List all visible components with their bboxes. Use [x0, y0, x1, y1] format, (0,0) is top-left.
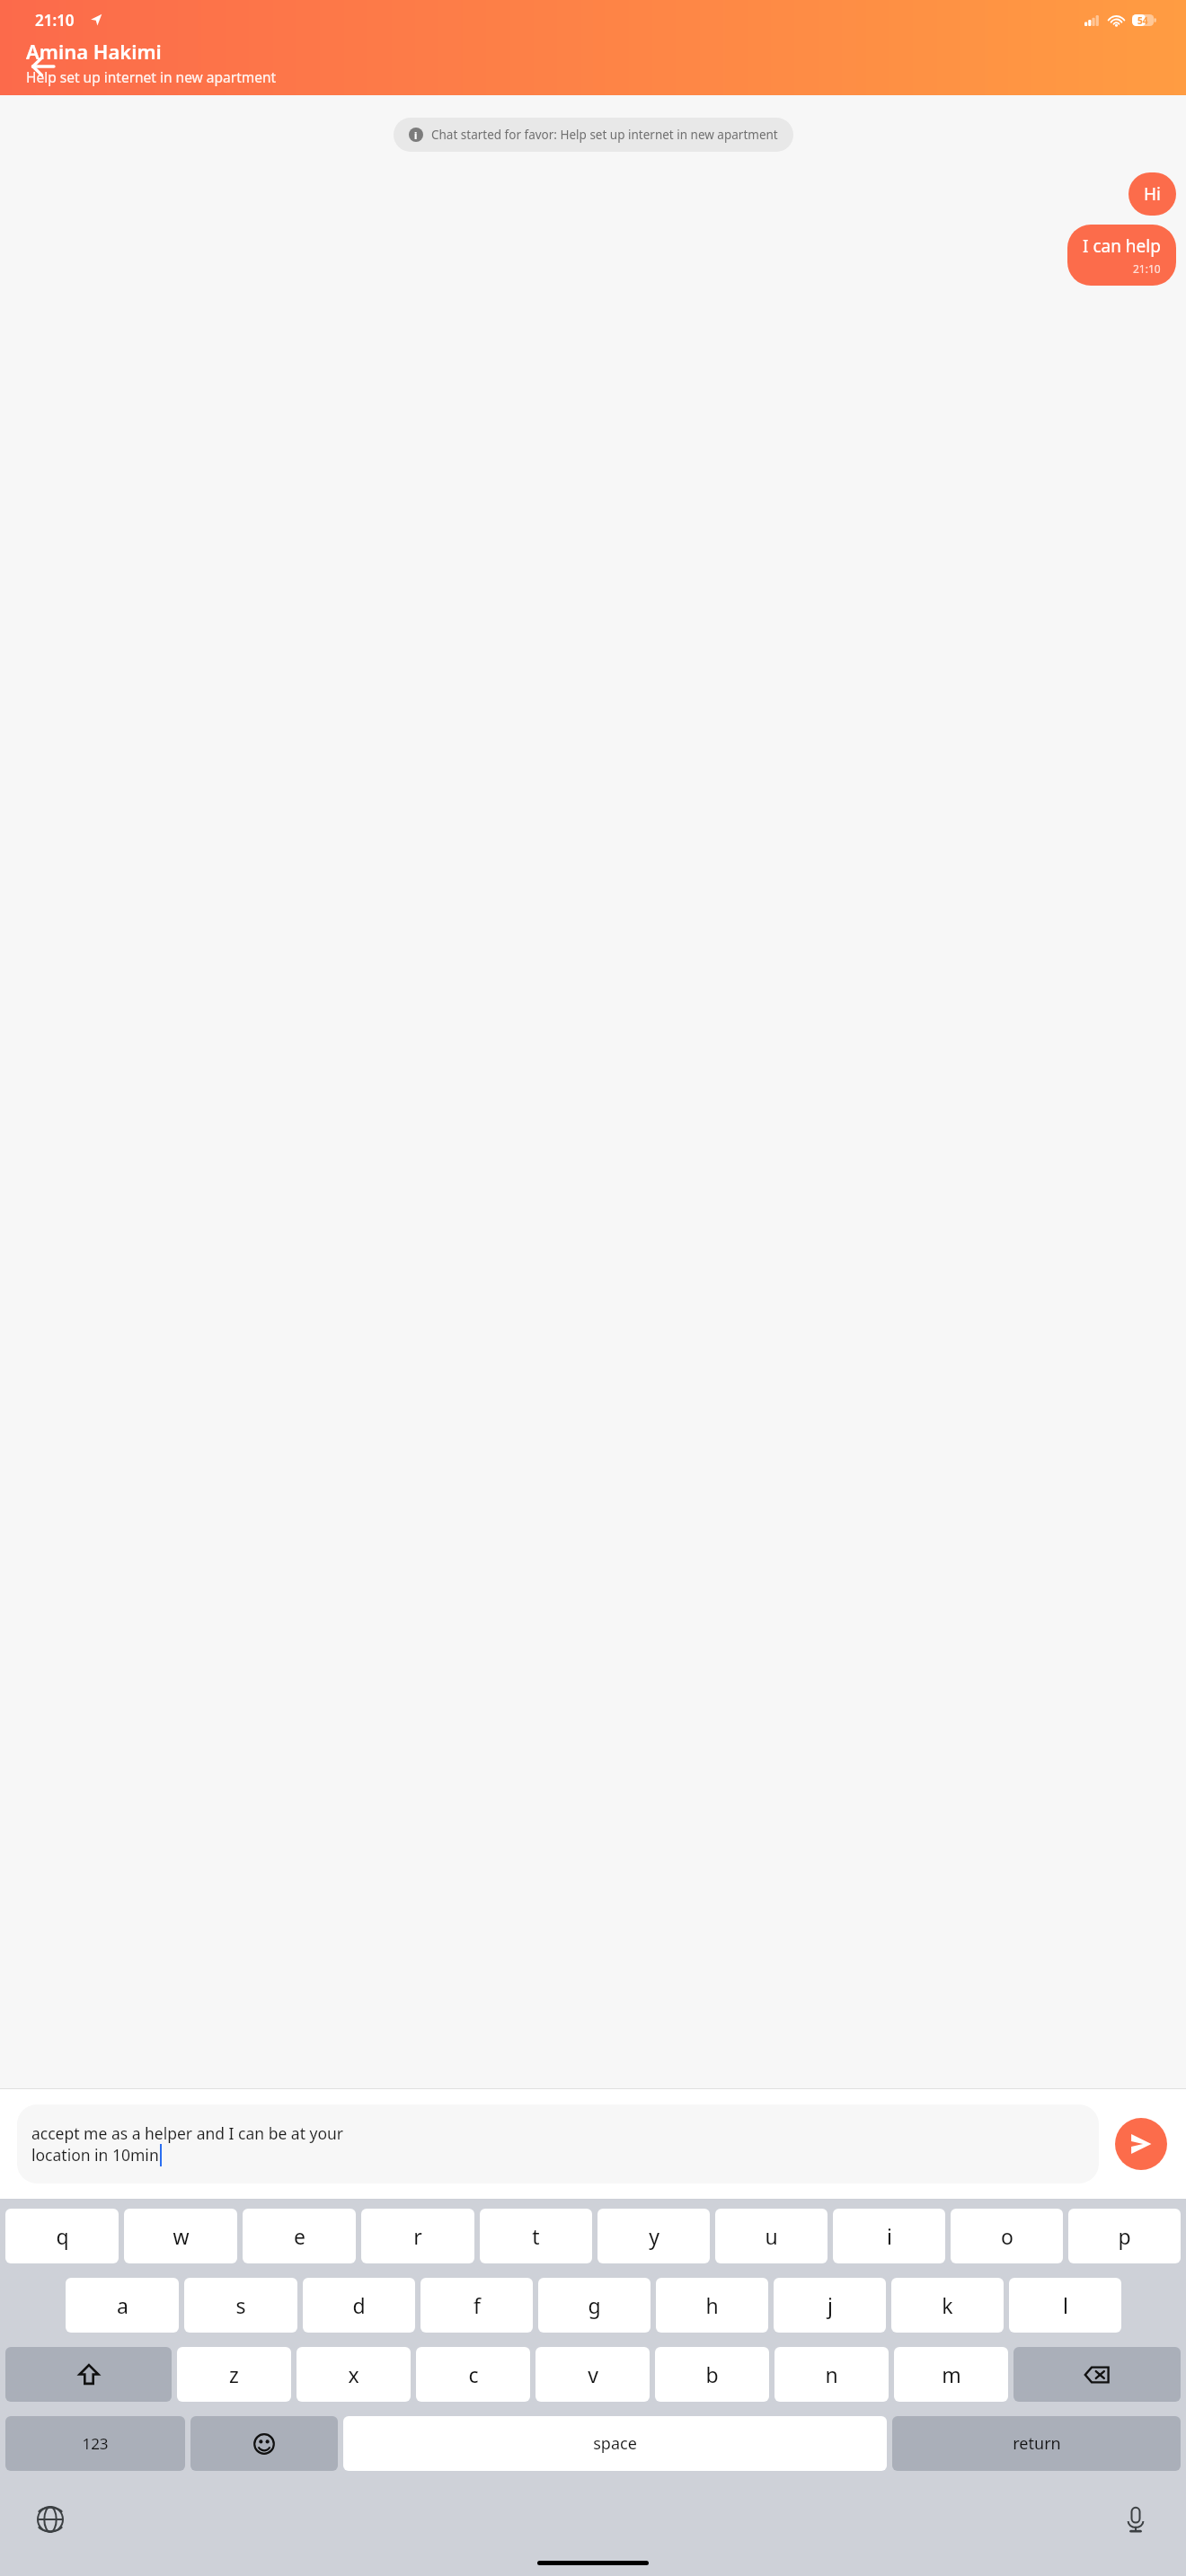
staticText: o — [1001, 2222, 1013, 2250]
staticText: a — [117, 2291, 128, 2319]
staticText: u — [765, 2222, 778, 2250]
button[interactable]: I can help — [1067, 225, 1176, 286]
button[interactable]: q — [5, 2209, 119, 2263]
button[interactable]: e — [243, 2209, 356, 2263]
button[interactable]: accept me as a helper and I can be at yo… — [17, 2104, 1099, 2183]
button[interactable]: Change language — [27, 2496, 74, 2543]
button[interactable]: g — [538, 2278, 651, 2333]
button[interactable]: Voice input — [1112, 2496, 1159, 2543]
button[interactable]: space — [343, 2416, 887, 2471]
button[interactable]: v — [535, 2347, 650, 2402]
staticText: Chat started for favor: Help set up inte… — [431, 127, 778, 143]
staticText: space — [593, 2432, 637, 2455]
staticText: m — [942, 2360, 961, 2388]
staticText: k — [942, 2291, 953, 2319]
button[interactable]: p — [1068, 2209, 1181, 2263]
staticText: n — [825, 2360, 838, 2388]
button[interactable]: Shift — [5, 2347, 172, 2402]
staticText: Amina Hakimi — [26, 38, 162, 65]
staticText: f — [474, 2291, 481, 2319]
button[interactable]: 123 — [5, 2416, 185, 2471]
staticText: r — [413, 2222, 422, 2250]
button[interactable]: Emoji — [190, 2416, 338, 2471]
staticText: z — [229, 2360, 239, 2388]
button[interactable]: i — [394, 118, 793, 152]
button[interactable]: h — [656, 2278, 768, 2333]
staticText: j — [828, 2291, 833, 2319]
staticText: d — [352, 2291, 366, 2319]
staticText: p — [1118, 2222, 1131, 2250]
button[interactable]: c — [416, 2347, 530, 2402]
staticText: 21:10 — [1133, 261, 1161, 276]
staticText: accept me as a helper and I can be at yo… — [31, 2122, 344, 2166]
staticText: c — [468, 2360, 479, 2388]
button[interactable]: Backspace — [1013, 2347, 1181, 2402]
staticText: g — [588, 2291, 601, 2319]
button[interactable]: Hi — [1128, 172, 1176, 216]
staticText: b — [705, 2360, 719, 2388]
button[interactable]: t — [480, 2209, 592, 2263]
button[interactable]: y — [597, 2209, 710, 2263]
button[interactable]: o — [951, 2209, 1063, 2263]
staticText: w — [173, 2222, 190, 2250]
staticText: e — [294, 2222, 305, 2250]
button[interactable]: w — [124, 2209, 237, 2263]
button[interactable]: u — [715, 2209, 828, 2263]
button[interactable]: n — [774, 2347, 889, 2402]
button[interactable]: return — [892, 2416, 1181, 2471]
button[interactable]: i — [833, 2209, 945, 2263]
button[interactable]: l — [1009, 2278, 1121, 2333]
button[interactable]: m — [894, 2347, 1008, 2402]
button[interactable]: d — [303, 2278, 415, 2333]
staticText: 123 — [82, 2433, 109, 2454]
button[interactable]: k — [891, 2278, 1004, 2333]
button[interactable]: s — [184, 2278, 297, 2333]
button[interactable]: x — [296, 2347, 411, 2402]
staticText: l — [1063, 2291, 1068, 2319]
button[interactable]: z — [177, 2347, 291, 2402]
staticText: h — [705, 2291, 719, 2319]
staticText: x — [348, 2360, 359, 2388]
staticText: t — [532, 2222, 540, 2250]
button[interactable]: Back — [20, 43, 66, 90]
button[interactable]: a — [66, 2278, 179, 2333]
button[interactable]: b — [655, 2347, 769, 2402]
staticText: s — [235, 2291, 246, 2319]
staticText: q — [56, 2222, 69, 2250]
staticText: return — [1013, 2432, 1061, 2455]
staticText: I can help — [1083, 234, 1161, 258]
staticText: v — [588, 2360, 598, 2388]
staticText: 54 — [1137, 14, 1148, 26]
staticText: 21:10 — [35, 10, 75, 31]
button[interactable]: j — [774, 2278, 886, 2333]
staticText: i — [414, 128, 418, 142]
button[interactable]: Send — [1115, 2118, 1167, 2170]
button[interactable]: f — [420, 2278, 533, 2333]
staticText: y — [649, 2222, 659, 2250]
staticText: Hi — [1144, 182, 1161, 206]
staticText: i — [887, 2222, 892, 2250]
button[interactable]: r — [361, 2209, 474, 2263]
staticText: Help set up internet in new apartment — [26, 67, 277, 86]
